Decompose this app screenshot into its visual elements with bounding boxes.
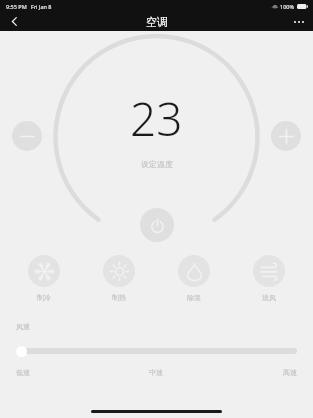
button[interactable]: Decrease temperature — [12, 121, 42, 151]
staticText: 送风 — [262, 293, 276, 302]
staticText: 设定温度 — [141, 159, 173, 169]
staticText: 制热 — [112, 293, 126, 302]
staticText: 100% — [280, 3, 295, 10]
staticText: 中速 — [109, 368, 203, 377]
button[interactable]: Increase temperature — [271, 121, 301, 151]
staticText: 除湿 — [187, 293, 201, 302]
button[interactable]: Heat mode — [87, 255, 151, 302]
button[interactable]: Power — [140, 208, 174, 242]
staticText: 低速 — [16, 368, 109, 377]
button[interactable]: Cool mode — [12, 255, 76, 302]
staticText: 制冷 — [37, 293, 51, 302]
staticText: 空调 — [146, 15, 168, 29]
button[interactable]: Fan mode — [237, 255, 301, 302]
staticText: 风速 — [16, 322, 30, 331]
button[interactable]: Fan speed slider — [16, 344, 297, 358]
staticText: 9:55 PM Fri Jan 8 — [6, 3, 52, 10]
button[interactable]: More options — [285, 12, 313, 31]
button[interactable]: Back — [0, 12, 28, 31]
staticText: 23 — [130, 87, 183, 150]
staticText: 高速 — [203, 368, 297, 377]
button[interactable]: Dehumidify mode — [162, 255, 226, 302]
